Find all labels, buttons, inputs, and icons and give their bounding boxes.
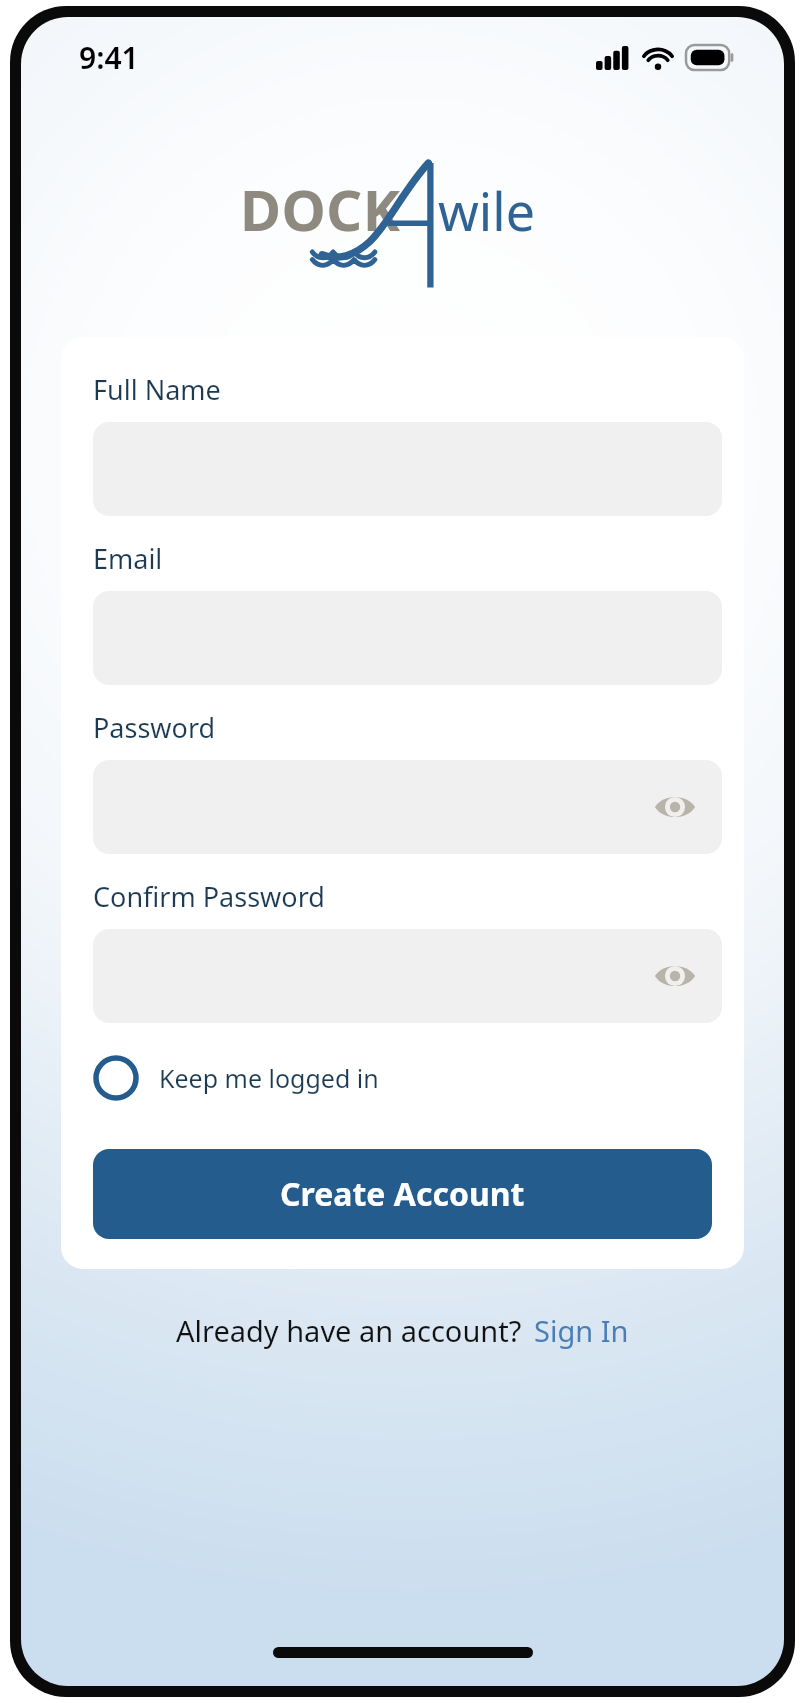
button[interactable]: Show confirm password: [648, 949, 702, 1003]
staticText: Email: [93, 540, 163, 577]
button[interactable]: Show password: [648, 780, 702, 834]
button[interactable]: Show password: [93, 760, 722, 854]
button[interactable]: Keep me logged in: [93, 1051, 379, 1105]
button[interactable]: Show confirm password: [93, 929, 722, 1023]
staticText: Keep me logged in: [159, 1061, 379, 1095]
button[interactable]: Sign In: [534, 1311, 629, 1350]
staticText: Confirm Password: [93, 878, 325, 915]
staticText: Already have an account?: [176, 1311, 522, 1350]
staticText: Create Account: [280, 1172, 525, 1216]
staticText: 9:41: [79, 37, 139, 78]
staticText: Password: [93, 709, 216, 746]
staticText: Sign In: [534, 1311, 629, 1350]
staticText: Full Name: [93, 371, 221, 408]
button[interactable]: Create Account: [93, 1149, 712, 1239]
staticText: wile: [438, 175, 536, 246]
staticText: DOCK: [240, 171, 401, 247]
